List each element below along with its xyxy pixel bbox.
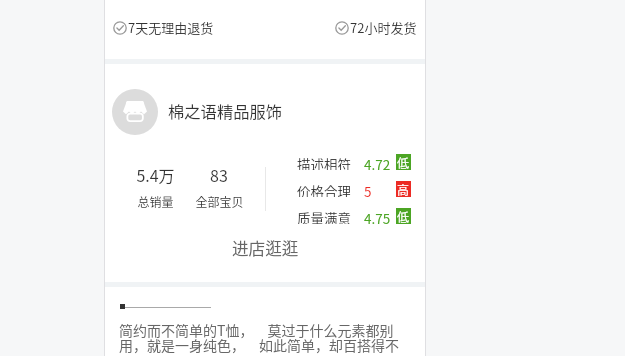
staticText: 简约而不简单的T恤， 莫过于什么元素都别用，就是一身纯色， 如此简单，却百搭得不: [119, 320, 401, 355]
staticText: 描述相符: [297, 154, 351, 170]
staticText: 进店逛逛: [232, 236, 299, 260]
staticText: 质量满意: [297, 208, 351, 224]
button[interactable]: 进店逛逛: [105, 228, 425, 268]
staticText: 4.75: [364, 208, 391, 224]
staticText: 总销量: [137, 193, 174, 210]
button[interactable]: 72小时发货: [335, 18, 417, 37]
staticText: 低: [397, 208, 410, 224]
staticText: 5: [364, 181, 372, 197]
staticText: 72小时发货: [350, 18, 417, 37]
staticText: 高: [397, 181, 410, 197]
button[interactable]: 5.4万: [115, 163, 195, 210]
staticText: 低: [397, 154, 410, 170]
staticText: 7天无理由退货: [128, 18, 214, 37]
staticText: 棉之语精品服饰: [168, 99, 283, 123]
staticText: 5.4万: [136, 163, 175, 186]
button[interactable]: 7天无理由退货: [113, 18, 214, 37]
button[interactable]: 83: [179, 163, 259, 210]
staticText: 4.72: [364, 154, 391, 170]
button[interactable]: 店铺头像: [112, 89, 158, 135]
button[interactable]: 棉之语精品服饰: [168, 99, 283, 123]
staticText: 全部宝贝: [195, 193, 244, 210]
staticText: 83: [210, 163, 228, 186]
staticText: 价格合理: [297, 181, 351, 197]
